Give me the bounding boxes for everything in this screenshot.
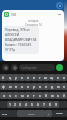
button[interactable]: м — [19, 92, 25, 99]
button[interactable]: д — [49, 83, 55, 90]
staticText: з — [57, 75, 59, 80]
button[interactable]: 9 — [53, 101, 59, 108]
staticText: б — [45, 93, 48, 98]
button[interactable]: щ — [49, 74, 55, 81]
button[interactable]: 1 — [7, 101, 12, 108]
staticText: д — [51, 84, 54, 89]
staticText: 4 — [25, 102, 27, 107]
staticText: 6 — [37, 102, 39, 107]
button[interactable]: з — [55, 74, 61, 81]
button[interactable]: а — [19, 83, 25, 90]
staticText: е — [27, 75, 29, 80]
button[interactable]: б — [43, 92, 49, 99]
staticText: Сегодня в 14 — [25, 23, 42, 27]
button[interactable]: п — [25, 83, 31, 90]
button[interactable]: я — [0, 92, 7, 99]
button[interactable]: ф — [0, 83, 7, 90]
button[interactable]: р — [31, 83, 37, 90]
button[interactable]: Send — [56, 64, 63, 71]
button[interactable]: 6 — [35, 101, 41, 108]
button[interactable]: ?123 — [0, 110, 10, 117]
button[interactable]: ь — [37, 92, 43, 99]
staticText: ь — [39, 93, 41, 98]
button[interactable]: 5 — [29, 101, 35, 108]
staticText: return — [56, 112, 63, 115]
staticText: 7 — [43, 102, 45, 107]
staticText: 2 — [14, 102, 16, 107]
button[interactable]: Return — [52, 110, 67, 117]
staticText: 1 — [9, 102, 11, 107]
staticText: л — [45, 84, 47, 89]
staticText: к — [21, 75, 23, 80]
button[interactable]: Profile — [56, 2, 63, 9]
staticText: н — [33, 75, 36, 80]
button[interactable]: Camera — [2, 64, 9, 71]
button[interactable]: ч — [7, 92, 13, 99]
staticText: space — [28, 112, 35, 115]
button[interactable]: л — [43, 83, 49, 90]
button[interactable]: й — [0, 74, 7, 81]
staticText: ш — [44, 75, 48, 80]
button[interactable]: 2 — [12, 101, 17, 108]
button[interactable]: х — [61, 74, 67, 81]
button[interactable]: ъ — [55, 92, 61, 99]
staticText: т — [33, 93, 35, 98]
button[interactable]: ц — [7, 74, 13, 81]
button[interactable]: у — [13, 74, 19, 81]
staticText: х — [63, 75, 65, 80]
button[interactable]: 7 — [41, 101, 47, 108]
staticText: Сообщение — [21, 66, 37, 70]
button[interactable]: Emoji — [10, 110, 17, 117]
staticText: ъ — [57, 93, 60, 98]
staticText: а — [21, 84, 23, 89]
staticText: м — [21, 93, 24, 98]
staticText: у — [15, 75, 17, 80]
button[interactable]: 4 — [23, 101, 29, 108]
button[interactable]: 3 — [17, 101, 23, 108]
staticText: и — [27, 93, 30, 98]
staticText: сегодня — [28, 19, 39, 23]
staticText: с — [15, 93, 17, 98]
button[interactable]: 8 — [47, 101, 53, 108]
staticText: ё — [63, 93, 65, 98]
button[interactable]: е — [25, 74, 31, 81]
staticText: о — [39, 84, 42, 89]
button[interactable]: т — [31, 92, 37, 99]
button[interactable]: . — [45, 110, 52, 117]
staticText: ц — [9, 75, 12, 80]
staticText: в — [15, 84, 17, 89]
button[interactable]: о — [37, 83, 43, 90]
staticText: 900 — [11, 13, 17, 17]
button[interactable]: в — [13, 83, 19, 90]
button[interactable]: Сообщение — [19, 64, 55, 71]
button[interactable]: ж — [55, 83, 61, 90]
staticText: ы — [9, 84, 12, 89]
button[interactable]: Shift — [0, 101, 7, 108]
staticText: 3 — [19, 102, 21, 107]
button[interactable]: Attach — [11, 64, 18, 71]
button[interactable]: к — [19, 74, 25, 81]
button[interactable]: ю — [49, 92, 55, 99]
button[interactable]: Перевод, 97б от АЛЕКСЕЙ ВЛАДИМИРОВИЧ М. … — [3, 26, 39, 54]
staticText: 8 — [49, 102, 51, 107]
staticText: ч — [9, 93, 11, 98]
staticText: й — [2, 75, 5, 80]
button[interactable]: с — [13, 92, 19, 99]
button[interactable]: н — [31, 74, 37, 81]
button[interactable]: э — [61, 83, 67, 90]
staticText: 9 — [55, 102, 57, 107]
button[interactable]: ы — [7, 83, 13, 90]
button[interactable]: ш — [43, 74, 49, 81]
staticText: 5 — [31, 102, 33, 107]
button[interactable]: г — [37, 74, 43, 81]
staticText: ?123 — [2, 112, 8, 115]
button[interactable]: 900 — [2, 10, 64, 19]
staticText: э — [63, 84, 65, 89]
button[interactable]: Space — [17, 110, 45, 117]
staticText: ф — [2, 84, 5, 89]
button[interactable]: и — [25, 92, 31, 99]
staticText: . — [48, 112, 49, 116]
button[interactable]: ё — [61, 92, 67, 99]
staticText: р — [33, 84, 36, 89]
